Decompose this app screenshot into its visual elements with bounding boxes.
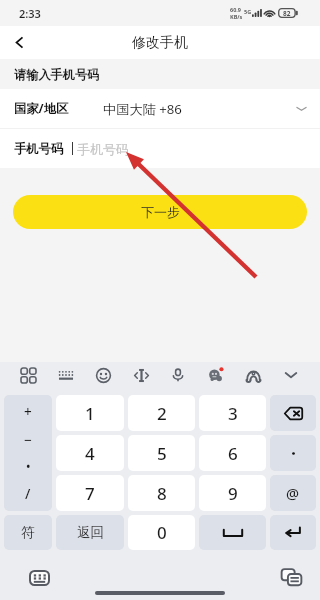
staticText: 60.9 — [230, 6, 241, 13]
button[interactable]: Back — [0, 26, 38, 59]
button[interactable]: 返回 — [56, 515, 124, 550]
button[interactable]: Text editing — [128, 362, 154, 388]
staticText: 手机号码 — [77, 141, 129, 157]
button[interactable]: 3 — [199, 395, 266, 431]
button[interactable]: Hide keyboard — [278, 362, 304, 388]
button[interactable]: 6 — [199, 435, 266, 471]
button[interactable]: 国家/地区 — [0, 89, 320, 128]
button[interactable]: Account — [240, 362, 266, 388]
staticText: @ — [286, 483, 300, 503]
button[interactable]: 4 — [56, 435, 124, 471]
staticText: 5G — [244, 8, 252, 15]
staticText: 修改手机 — [132, 34, 188, 52]
staticText: 6 — [228, 442, 238, 465]
staticText: 1 — [85, 402, 95, 425]
button[interactable]: Switch input method — [25, 564, 53, 592]
button[interactable]: Backspace — [270, 395, 316, 431]
button[interactable]: Stickers — [203, 362, 229, 388]
button[interactable]: Voice input — [165, 362, 191, 388]
staticText: − — [24, 431, 32, 449]
staticText: 8 — [157, 482, 167, 505]
staticText: 下一步 — [141, 204, 180, 220]
staticText: 9 — [228, 482, 238, 505]
staticText: 请输入手机号码 — [14, 67, 100, 82]
staticText: 7 — [85, 482, 95, 505]
staticText: 符 — [21, 524, 35, 541]
button[interactable]: @ — [270, 475, 316, 511]
button[interactable]: 5 — [128, 435, 195, 471]
button[interactable]: 下一步 — [13, 195, 307, 229]
button[interactable]: Emoji — [90, 362, 116, 388]
button[interactable]: 手机号码 — [0, 129, 320, 168]
button[interactable]: Enter — [270, 515, 316, 550]
staticText: 国家/地区 — [14, 100, 69, 117]
staticText: 手机号码 — [14, 141, 64, 156]
staticText: + — [24, 403, 32, 421]
button[interactable]: Space — [199, 515, 266, 550]
staticText: 82 — [283, 9, 291, 18]
staticText: KB/s — [230, 13, 243, 20]
staticText: 返回 — [77, 524, 104, 541]
button[interactable]: 9 — [199, 475, 266, 511]
staticText: 5 — [157, 442, 167, 465]
button[interactable]: . — [270, 435, 316, 471]
button[interactable]: 1 — [56, 395, 124, 431]
button[interactable]: Clipboard — [277, 563, 305, 591]
button[interactable]: 符 — [4, 515, 52, 550]
staticText: 4 — [85, 442, 95, 465]
staticText: 中国大陆 +86 — [103, 100, 182, 118]
button[interactable]: + — [4, 395, 52, 511]
staticText: • — [26, 458, 31, 474]
button[interactable]: Apps — [15, 362, 41, 388]
button[interactable]: Keyboard layout — [53, 362, 79, 388]
staticText: / — [25, 484, 31, 503]
button[interactable]: 0 — [128, 515, 195, 550]
staticText: 2:33 — [19, 6, 41, 21]
button[interactable]: 8 — [128, 475, 195, 511]
button[interactable]: 7 — [56, 475, 124, 511]
staticText: 2 — [157, 402, 167, 425]
staticText: 0 — [157, 521, 167, 544]
staticText: 3 — [228, 402, 238, 425]
button[interactable]: 2 — [128, 395, 195, 431]
